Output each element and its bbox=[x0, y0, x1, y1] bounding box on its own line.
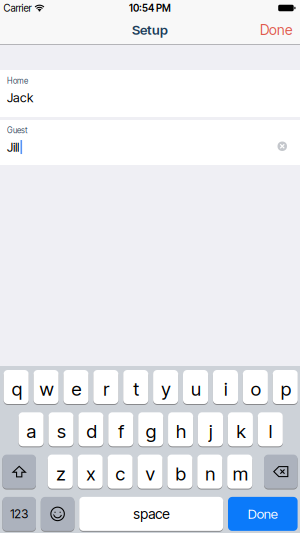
button[interactable]: Done bbox=[228, 496, 298, 531]
button[interactable]: y bbox=[153, 369, 178, 404]
staticText: c bbox=[116, 462, 126, 485]
button[interactable]: Done bbox=[260, 21, 300, 38]
staticText: u bbox=[191, 378, 201, 400]
staticText: Home bbox=[7, 76, 28, 86]
button[interactable]: d bbox=[78, 412, 103, 447]
staticText: g bbox=[146, 420, 157, 443]
button[interactable]: Shift bbox=[2, 454, 36, 489]
button[interactable]: j bbox=[198, 412, 223, 447]
staticText: Setup bbox=[132, 22, 168, 38]
staticText: Jill bbox=[7, 139, 19, 155]
staticText: Done bbox=[248, 506, 278, 522]
button[interactable]: z bbox=[48, 454, 73, 489]
button[interactable]: Home text field bbox=[0, 70, 300, 117]
button[interactable]: g bbox=[138, 412, 163, 447]
button[interactable]: Guest text field bbox=[0, 120, 300, 165]
button[interactable]: b bbox=[167, 454, 192, 489]
staticText: k bbox=[236, 420, 245, 443]
button[interactable]: Clear text bbox=[277, 141, 300, 151]
button[interactable]: e bbox=[63, 369, 88, 404]
staticText: i bbox=[224, 378, 228, 400]
button[interactable]: v bbox=[137, 454, 162, 489]
staticText: Carrier bbox=[3, 2, 31, 14]
staticText: z bbox=[56, 462, 65, 485]
button[interactable]: space bbox=[79, 496, 223, 531]
staticText: v bbox=[145, 462, 155, 485]
button[interactable]: w bbox=[33, 369, 59, 404]
button[interactable]: i bbox=[213, 369, 238, 404]
button[interactable]: n bbox=[197, 454, 222, 489]
staticText: p bbox=[281, 378, 291, 400]
button[interactable]: m bbox=[227, 454, 252, 489]
staticText: a bbox=[27, 420, 37, 443]
staticText: n bbox=[205, 462, 215, 485]
staticText: b bbox=[175, 462, 185, 485]
button[interactable]: Emoji bbox=[41, 496, 74, 531]
button[interactable]: t bbox=[123, 369, 148, 404]
button[interactable]: x bbox=[78, 454, 103, 489]
staticText: t bbox=[133, 378, 139, 400]
button[interactable]: 123 bbox=[2, 496, 36, 531]
staticText: o bbox=[251, 378, 261, 400]
staticText: Jack bbox=[7, 90, 33, 105]
button[interactable]: l bbox=[258, 412, 283, 447]
button[interactable]: a bbox=[19, 412, 44, 447]
staticText: 10:54 PM bbox=[129, 2, 171, 14]
button[interactable]: u bbox=[183, 369, 208, 404]
button[interactable]: k bbox=[228, 412, 253, 447]
button[interactable]: c bbox=[108, 454, 133, 489]
staticText: j bbox=[209, 420, 213, 443]
button[interactable]: q bbox=[4, 369, 29, 404]
staticText: Guest bbox=[7, 125, 28, 135]
staticText: e bbox=[71, 378, 81, 400]
staticText: x bbox=[86, 462, 95, 485]
staticText: l bbox=[269, 420, 273, 443]
staticText: r bbox=[103, 378, 109, 400]
button[interactable]: r bbox=[93, 369, 118, 404]
staticText: Done bbox=[260, 21, 292, 38]
staticText: h bbox=[176, 420, 186, 443]
button[interactable]: s bbox=[48, 412, 74, 447]
staticText: space bbox=[133, 505, 169, 522]
staticText: m bbox=[233, 462, 248, 485]
button[interactable]: Delete bbox=[264, 454, 298, 489]
staticText: s bbox=[57, 420, 66, 443]
staticText: y bbox=[161, 378, 171, 400]
staticText: q bbox=[12, 378, 22, 400]
staticText: 123 bbox=[10, 507, 28, 521]
button[interactable]: h bbox=[168, 412, 193, 447]
button[interactable]: o bbox=[243, 369, 268, 404]
staticText: f bbox=[118, 420, 124, 443]
button[interactable]: f bbox=[108, 412, 133, 447]
staticText: w bbox=[39, 378, 53, 400]
button[interactable]: p bbox=[273, 369, 298, 404]
staticText: d bbox=[86, 420, 96, 443]
